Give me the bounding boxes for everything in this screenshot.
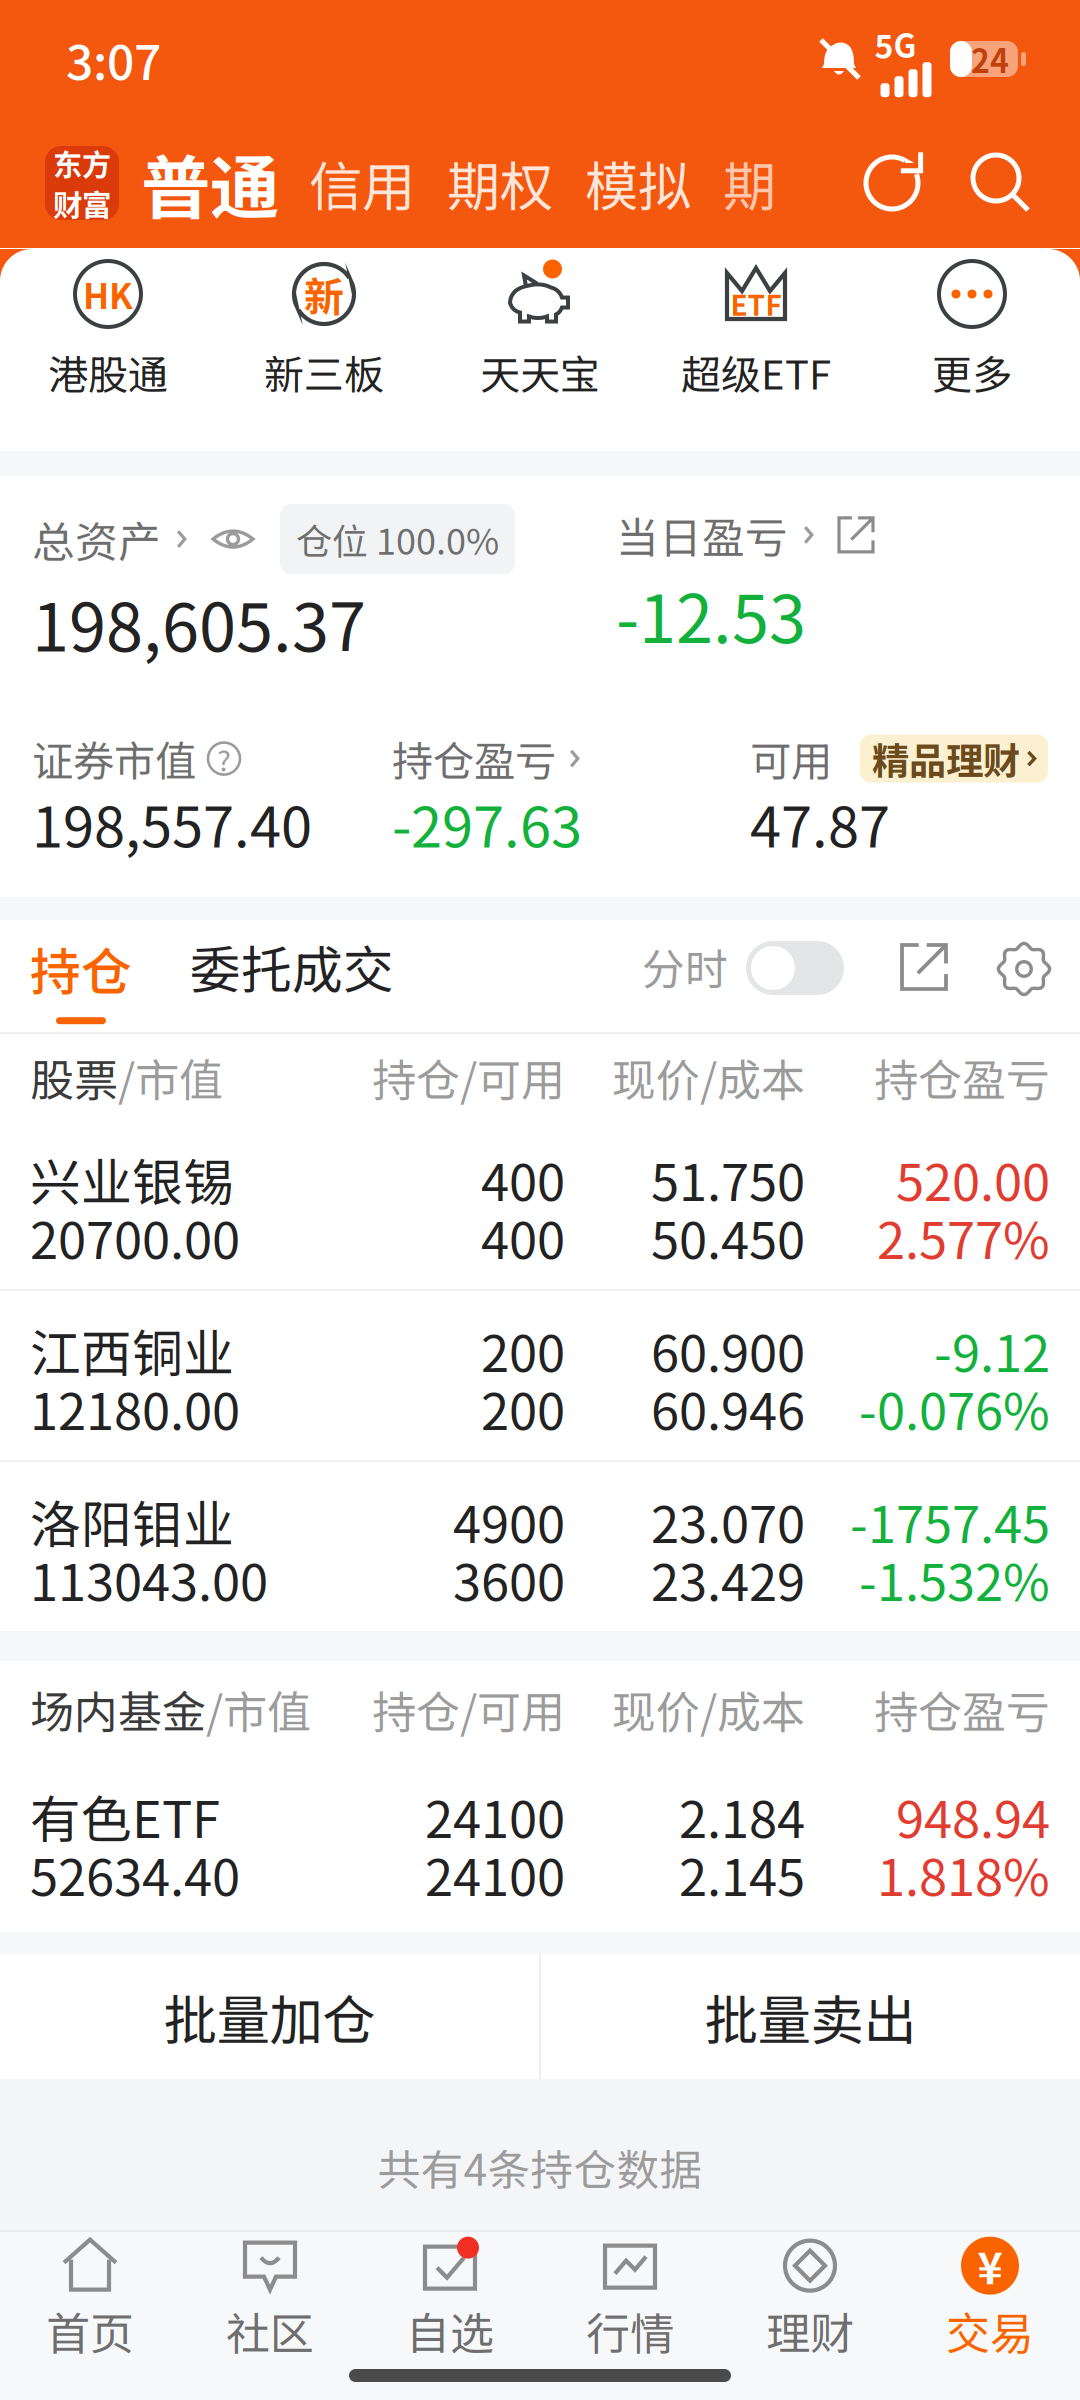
staticText: 60.900 bbox=[651, 1313, 805, 1387]
staticText: 24100 bbox=[425, 1779, 565, 1853]
button[interactable]: 期 bbox=[707, 144, 767, 222]
button[interactable]: 精品理财 bbox=[860, 735, 1048, 783]
staticText: 分时 bbox=[642, 936, 728, 997]
staticText: 场内基金 bbox=[30, 1677, 206, 1741]
staticText: /市值 bbox=[206, 1677, 311, 1741]
button[interactable]: 更多 bbox=[864, 248, 1080, 451]
staticText: 新三板 bbox=[264, 343, 384, 401]
staticText: 超级ETF bbox=[681, 343, 831, 401]
staticText: -9.12 bbox=[934, 1313, 1050, 1387]
button[interactable]: 理财 bbox=[720, 2236, 900, 2362]
staticText: 2.145 bbox=[679, 1837, 805, 1911]
staticText: -0.076% bbox=[859, 1371, 1050, 1445]
button[interactable]: ETF bbox=[648, 248, 864, 451]
staticText: 仓位 100.0% bbox=[296, 513, 499, 565]
staticText: 模拟 bbox=[585, 144, 691, 222]
staticText: 948.94 bbox=[896, 1779, 1050, 1853]
button[interactable]: 江西铜业 bbox=[0, 1291, 1080, 1460]
staticText: 400 bbox=[481, 1142, 565, 1216]
staticText: /市值 bbox=[118, 1045, 223, 1109]
staticText: 23.429 bbox=[651, 1542, 805, 1616]
button[interactable]: 首页 bbox=[0, 2236, 180, 2362]
staticText: 江西铜业 bbox=[30, 1313, 234, 1387]
staticText: 理财 bbox=[766, 2299, 854, 2362]
button[interactable]: 模拟 bbox=[569, 144, 707, 222]
staticText: 可用 bbox=[750, 729, 832, 789]
staticText: -297.63 bbox=[392, 782, 582, 864]
staticText: 60.946 bbox=[651, 1371, 805, 1445]
button[interactable]: Time toggle bbox=[728, 941, 844, 1011]
staticText: 198,557.40 bbox=[32, 782, 312, 864]
staticText: ¥ bbox=[977, 2235, 1002, 2297]
button[interactable]: 期权 bbox=[431, 144, 569, 222]
staticText: 现价/成本 bbox=[612, 1677, 805, 1741]
staticText: 50.450 bbox=[651, 1200, 805, 1274]
staticText: 有色ETF bbox=[30, 1779, 220, 1853]
button[interactable]: 有色ETF bbox=[0, 1757, 1080, 1932]
staticText: 普通 bbox=[141, 133, 279, 233]
button[interactable]: Refresh bbox=[864, 151, 926, 215]
staticText: 200 bbox=[481, 1313, 565, 1387]
staticText: 24100 bbox=[425, 1837, 565, 1911]
staticText: 持仓盈亏 bbox=[874, 1677, 1050, 1741]
staticText: -1757.45 bbox=[850, 1484, 1050, 1558]
staticText: 47.87 bbox=[750, 782, 890, 864]
staticText: -1.532% bbox=[859, 1542, 1050, 1616]
staticText: 2.184 bbox=[679, 1779, 805, 1853]
staticText: 精品理财 bbox=[872, 732, 1020, 786]
staticText: 520.00 bbox=[896, 1142, 1050, 1216]
button[interactable]: 委托成交 bbox=[132, 930, 394, 1022]
staticText: -12.53 bbox=[616, 566, 806, 662]
staticText: 新 bbox=[304, 265, 344, 323]
button[interactable]: 新 bbox=[216, 248, 432, 451]
staticText: 港股通 bbox=[48, 343, 168, 401]
staticText: 52634.40 bbox=[30, 1837, 240, 1911]
staticText: 行情 bbox=[586, 2299, 674, 2362]
button[interactable]: Search bbox=[926, 152, 1032, 214]
staticText: 交易 bbox=[946, 2299, 1034, 2362]
staticText: 东方 bbox=[53, 141, 111, 184]
button[interactable]: 兴业银锡 bbox=[0, 1120, 1080, 1289]
button[interactable]: 天天宝 bbox=[432, 248, 648, 451]
staticText: 持仓 bbox=[30, 932, 132, 1005]
button[interactable]: 批量加仓 bbox=[0, 1954, 539, 2079]
staticText: 400 bbox=[481, 1200, 565, 1274]
staticText: 20700.00 bbox=[30, 1200, 240, 1274]
staticText: 200 bbox=[481, 1371, 565, 1445]
button[interactable]: 信用 bbox=[293, 144, 431, 222]
button[interactable]: ¥ bbox=[900, 2236, 1080, 2362]
staticText: 24 bbox=[971, 36, 1009, 82]
staticText: 共有4条持仓数据 bbox=[377, 2136, 702, 2198]
button[interactable]: HK bbox=[0, 248, 216, 451]
staticText: 3:07 bbox=[66, 24, 161, 94]
staticText: 3600 bbox=[453, 1542, 565, 1616]
button[interactable]: Share bbox=[844, 945, 946, 1007]
staticText: 首页 bbox=[46, 2299, 134, 2362]
button[interactable]: Settings bbox=[946, 943, 1050, 1009]
button[interactable]: 社区 bbox=[180, 2236, 360, 2362]
staticText: 期权 bbox=[447, 144, 553, 222]
button[interactable]: 批量卖出 bbox=[541, 1954, 1080, 2079]
staticText: 社区 bbox=[226, 2299, 314, 2362]
staticText: 2.577% bbox=[877, 1200, 1050, 1274]
staticText: 持仓盈亏 bbox=[874, 1045, 1050, 1109]
staticText: 12180.00 bbox=[30, 1371, 240, 1445]
staticText: 批量卖出 bbox=[704, 1978, 916, 2055]
staticText: 当日盈亏 bbox=[616, 504, 788, 566]
staticText: 自选 bbox=[406, 2299, 494, 2362]
staticText: 总资产 bbox=[32, 508, 161, 570]
staticText: 持仓/可用 bbox=[372, 1677, 565, 1741]
staticText: ETF bbox=[730, 283, 781, 324]
staticText: 5G bbox=[874, 21, 916, 67]
staticText: HK bbox=[83, 269, 133, 319]
staticText: 现价/成本 bbox=[612, 1045, 805, 1109]
button[interactable]: 自选 bbox=[360, 2236, 540, 2362]
staticText: ? bbox=[217, 737, 231, 780]
button[interactable]: 行情 bbox=[540, 2236, 720, 2362]
button[interactable]: 持仓 bbox=[30, 928, 132, 1024]
staticText: 持仓盈亏 bbox=[392, 729, 556, 789]
staticText: 财富 bbox=[53, 182, 111, 224]
button[interactable]: 普通 bbox=[119, 133, 293, 233]
button[interactable]: 洛阳钼业 bbox=[0, 1462, 1080, 1631]
staticText: 洛阳钼业 bbox=[30, 1484, 234, 1558]
